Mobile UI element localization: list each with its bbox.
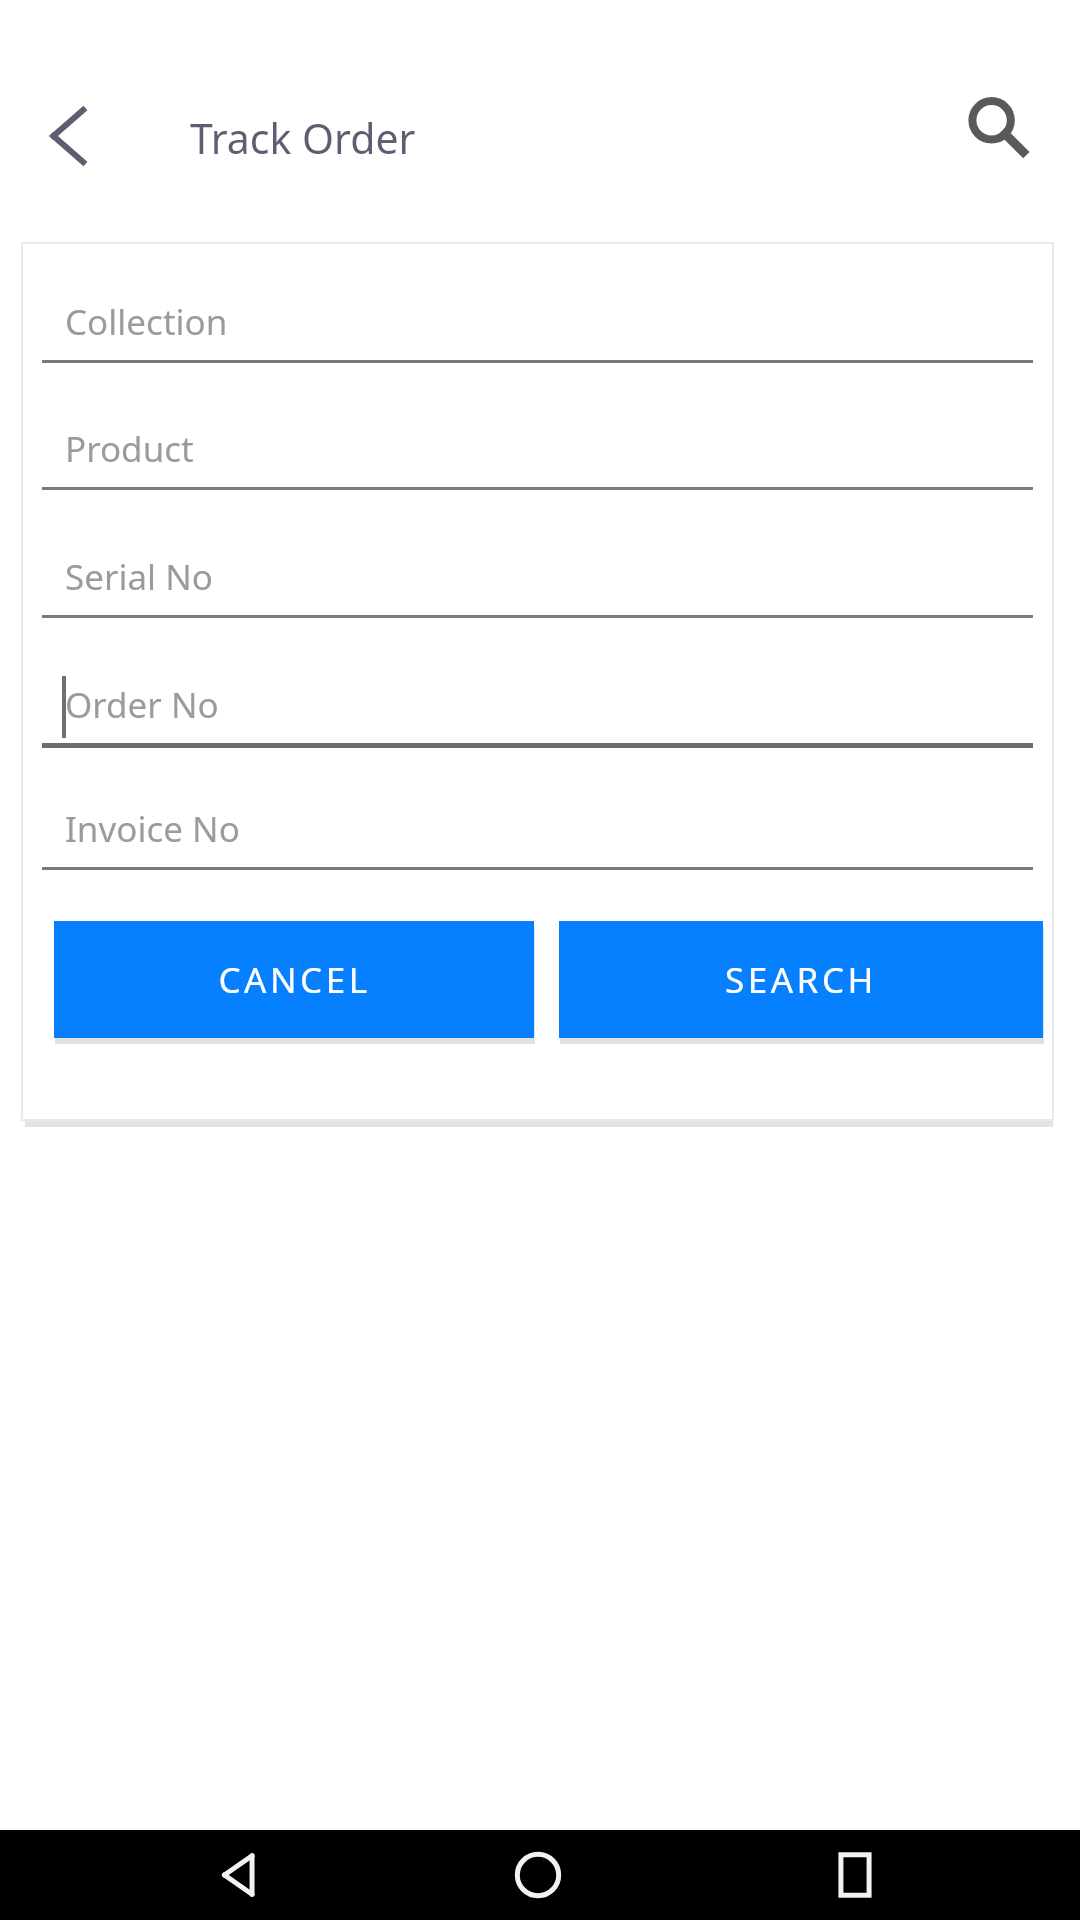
- staticText: Invoice No: [65, 805, 240, 853]
- button[interactable]: SEARCH: [559, 921, 1043, 1038]
- button[interactable]: Recent apps: [810, 1830, 900, 1920]
- staticText: Collection: [65, 298, 228, 346]
- staticText: Product: [65, 425, 194, 473]
- button[interactable]: Order No: [42, 673, 1033, 749]
- button[interactable]: Back: [22, 86, 122, 186]
- button[interactable]: Collection: [42, 290, 1033, 366]
- button[interactable]: Search: [948, 78, 1048, 178]
- button[interactable]: CANCEL: [54, 921, 534, 1038]
- button[interactable]: Product: [42, 417, 1033, 493]
- staticText: CANCEL: [218, 956, 371, 1004]
- staticText: Track Order: [190, 110, 416, 166]
- staticText: SEARCH: [725, 956, 877, 1004]
- button[interactable]: Invoice No: [42, 797, 1033, 873]
- staticText: Order No: [65, 681, 219, 729]
- button[interactable]: Home: [493, 1830, 583, 1920]
- staticText: Serial No: [65, 553, 213, 601]
- button[interactable]: Back: [196, 1830, 286, 1920]
- button[interactable]: Serial No: [42, 545, 1033, 621]
